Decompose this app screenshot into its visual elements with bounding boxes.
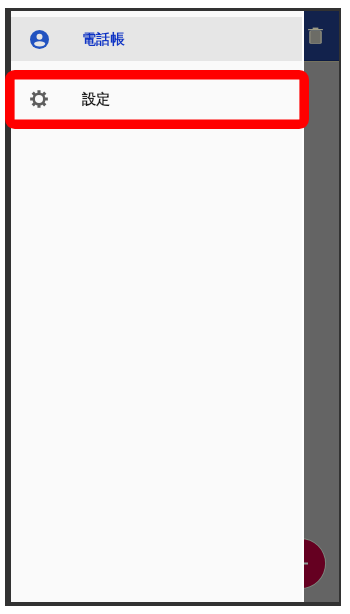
button[interactable]: Add	[275, 538, 326, 589]
button[interactable]: Delete	[295, 15, 335, 55]
button[interactable]: 設定	[11, 77, 304, 121]
button[interactable]: 電話帳	[11, 17, 304, 61]
staticText: 電話帳	[82, 31, 124, 49]
staticText: 設定	[82, 91, 110, 109]
